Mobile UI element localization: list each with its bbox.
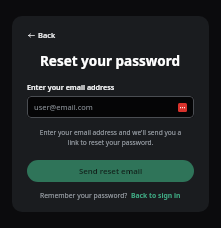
staticText: Send reset email <box>79 166 143 177</box>
staticText: Reset your password <box>40 52 181 70</box>
button[interactable]: Back <box>27 28 57 42</box>
button[interactable]: Autofill password <box>178 103 187 112</box>
other: Back <box>28 32 35 39</box>
staticText: Back to sign in <box>131 191 181 200</box>
staticText: Remember your password? <box>40 191 128 200</box>
staticText: Enter your email address and we'll send … <box>34 128 187 147</box>
button[interactable]: Send reset email <box>27 160 194 182</box>
button[interactable]: user@email.com <box>27 96 194 118</box>
button[interactable]: Back to sign in <box>131 191 181 200</box>
staticText: Enter your email address <box>27 82 115 92</box>
staticText: user@email.com <box>34 102 178 112</box>
staticText: Back <box>38 30 56 40</box>
